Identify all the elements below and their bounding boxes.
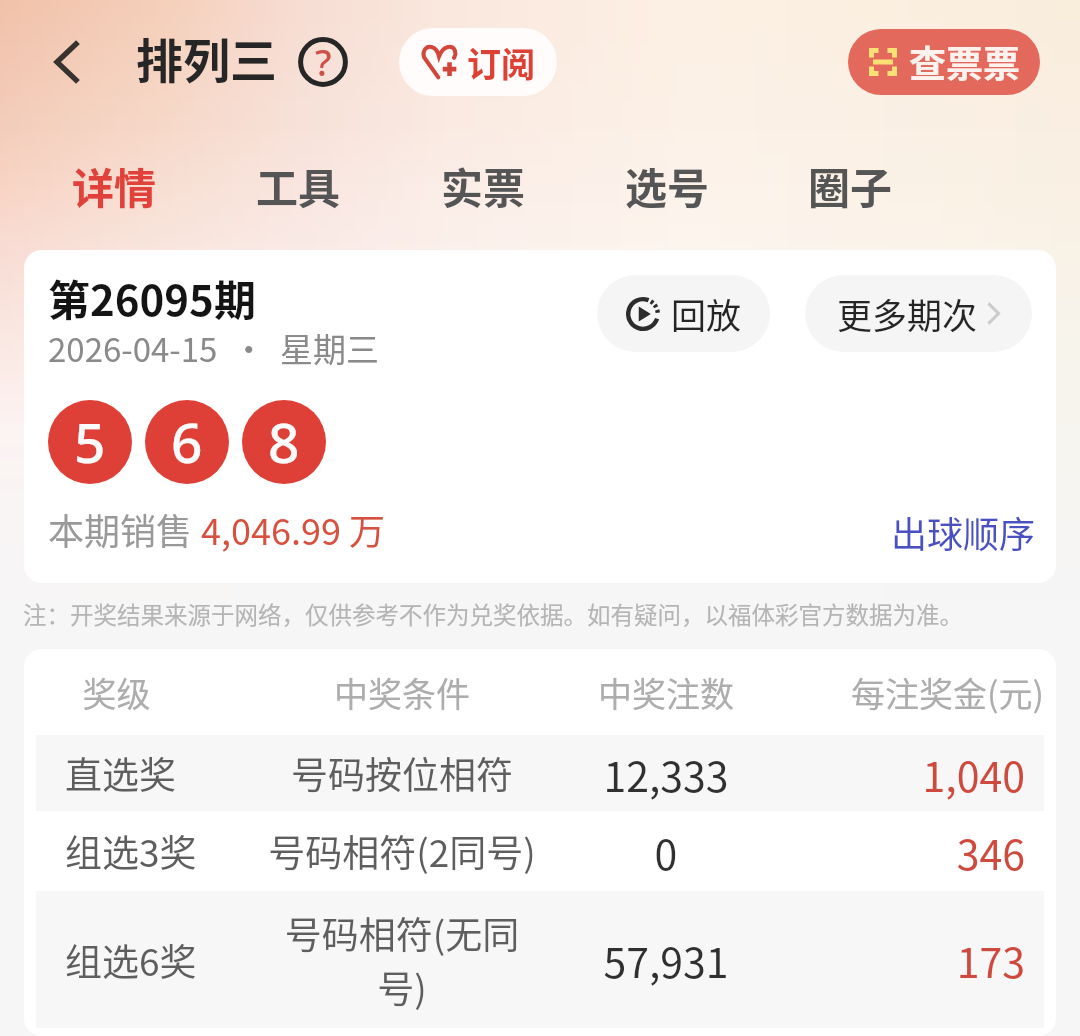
button[interactable]: 更多期次 bbox=[805, 275, 1032, 352]
button[interactable]: 组选3奖 bbox=[36, 811, 1044, 891]
staticText: 组选6奖 bbox=[65, 933, 245, 987]
staticText: 排列三 bbox=[136, 23, 277, 91]
staticText: 圈子 bbox=[808, 155, 893, 216]
staticText: 奖级 bbox=[37, 668, 196, 717]
staticText: 第26095期 bbox=[48, 267, 256, 328]
button[interactable]: 出球顺序 bbox=[891, 506, 1036, 558]
staticText: 详情 bbox=[72, 155, 157, 216]
staticText: 号码相符(2同号) bbox=[266, 824, 538, 878]
button[interactable]: 组选6奖 bbox=[36, 891, 1044, 1028]
staticText: 8 bbox=[268, 404, 300, 479]
staticText: 4,046.99 万 bbox=[201, 503, 385, 555]
staticText: 本期销售 bbox=[48, 503, 201, 555]
staticText: 中奖条件 bbox=[266, 668, 538, 717]
button[interactable]: Back bbox=[31, 27, 101, 97]
staticText: 中奖注数 bbox=[540, 668, 792, 717]
button[interactable]: 工具 bbox=[238, 145, 358, 225]
staticText: 12,333 bbox=[540, 744, 792, 803]
staticText: 号码按位相符 bbox=[266, 746, 538, 800]
staticText: 注：开奖结果来源于网络，仅供参考不作为兑奖依据。如有疑问，以福体彩官方数据为准。 bbox=[23, 597, 963, 631]
button[interactable]: 实票 bbox=[423, 145, 543, 225]
button[interactable]: 圈子 bbox=[790, 145, 910, 225]
button[interactable]: Help bbox=[293, 32, 353, 92]
staticText: 直选奖 bbox=[65, 746, 245, 800]
staticText: 每注奖金(元) bbox=[808, 668, 1044, 717]
staticText: 号码相符(无同号) bbox=[266, 906, 538, 1014]
staticText: ? bbox=[315, 36, 332, 86]
staticText: 173 bbox=[785, 930, 1025, 989]
button[interactable]: 选号 bbox=[607, 145, 727, 225]
staticText: 工具 bbox=[256, 155, 341, 216]
staticText: 实票 bbox=[441, 155, 526, 216]
button[interactable]: 排列三 bbox=[136, 23, 277, 91]
staticText: 组选3奖 bbox=[65, 824, 245, 878]
staticText: 订阅 bbox=[467, 38, 535, 87]
button[interactable]: 详情 bbox=[54, 145, 174, 225]
staticText: 57,931 bbox=[540, 930, 792, 989]
staticText: 更多期次 bbox=[837, 288, 978, 339]
staticText: 选号 bbox=[625, 155, 710, 216]
staticText: 查票票 bbox=[909, 35, 1020, 89]
staticText: 5 bbox=[74, 404, 106, 479]
staticText: 346 bbox=[785, 822, 1025, 881]
staticText: 1,040 bbox=[785, 744, 1025, 803]
staticText: 0 bbox=[540, 822, 792, 881]
button[interactable]: 订阅 bbox=[399, 28, 557, 96]
button[interactable]: 查票票 bbox=[848, 29, 1040, 95]
staticText: 回放 bbox=[671, 288, 742, 339]
button[interactable]: 回放 bbox=[597, 275, 770, 352]
button[interactable]: 直选奖 bbox=[36, 735, 1044, 811]
staticText: 出球顺序 bbox=[891, 506, 1036, 558]
staticText: 6 bbox=[171, 404, 203, 479]
staticText: 2026-04-15 · 星期三 bbox=[48, 324, 379, 372]
